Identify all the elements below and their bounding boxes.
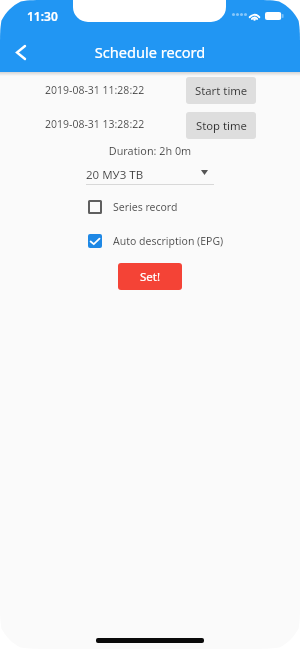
button[interactable]: Stop time: [186, 112, 256, 139]
staticText: Series record: [113, 200, 178, 214]
staticText: Schedule record: [0, 42, 300, 62]
button[interactable]: Auto description (EPG): [88, 233, 224, 249]
staticText: 2019-08-31 11:28:22: [45, 83, 145, 97]
button[interactable]: Back: [0, 30, 43, 74]
button[interactable]: Set!: [118, 263, 182, 290]
staticText: 2019-08-31 13:28:22: [45, 117, 145, 131]
button[interactable]: Start time: [186, 77, 256, 104]
button[interactable]: 20 МУЗ ТВ: [86, 165, 214, 185]
staticText: Auto description (EPG): [113, 234, 224, 248]
staticText: Set!: [140, 269, 161, 285]
staticText: 20 МУЗ ТВ: [86, 167, 144, 183]
staticText: Start time: [195, 83, 248, 98]
staticText: 11:30: [27, 8, 58, 24]
button[interactable]: Series record: [88, 199, 178, 215]
staticText: Duration: 2h 0m: [0, 143, 300, 158]
staticText: Stop time: [196, 118, 247, 133]
